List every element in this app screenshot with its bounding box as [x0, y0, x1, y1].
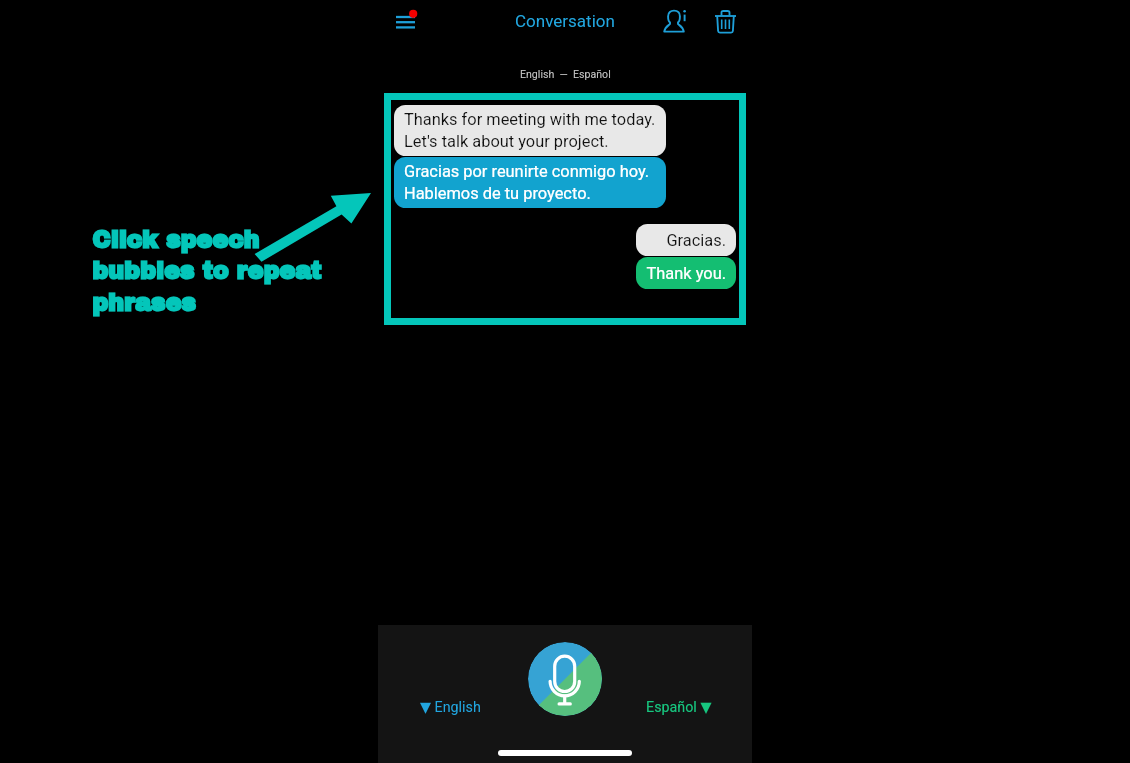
- button[interactable]: Menu: [386, 0, 430, 44]
- button[interactable]: Gracias.: [636, 224, 736, 256]
- staticText: ▼ English: [420, 699, 481, 716]
- staticText: Thanks for meeting with me today. Let's …: [404, 110, 656, 151]
- staticText: Conversation: [515, 11, 615, 31]
- staticText: Thank you.: [646, 264, 726, 283]
- staticText: Gracias por reunirte conmigo hoy. Hablem…: [404, 162, 650, 203]
- button[interactable]: Microphone: [528, 642, 602, 716]
- button[interactable]: Gracias por reunirte conmigo hoy. Hablem…: [394, 157, 666, 208]
- staticText: Click speech bubbles to repeat phrases: [92, 227, 321, 316]
- staticText: English — Español: [520, 68, 611, 80]
- button[interactable]: Thanks for meeting with me today. Let's …: [394, 105, 666, 156]
- button[interactable]: ▼ English: [414, 695, 487, 720]
- button[interactable]: Delete conversation: [715, 4, 749, 38]
- staticText: Español ▼: [646, 699, 712, 716]
- button[interactable]: Thank you.: [636, 257, 736, 289]
- button[interactable]: Español ▼: [640, 695, 718, 720]
- staticText: Gracias.: [666, 231, 726, 250]
- button[interactable]: Contact info: [663, 5, 697, 39]
